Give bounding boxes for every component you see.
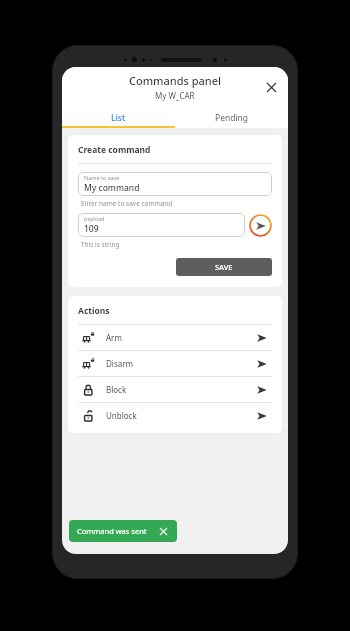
staticText: This is string <box>81 240 120 249</box>
staticText: payload <box>84 215 105 222</box>
button[interactable]: payload <box>78 213 245 237</box>
staticText: Command was sent <box>77 526 147 536</box>
button[interactable]: Send Block <box>254 382 270 398</box>
staticText: Name to save <box>84 174 120 181</box>
staticText: Actions <box>78 305 110 317</box>
staticText: Create command <box>78 144 151 156</box>
button[interactable]: Send Disarm <box>254 356 270 372</box>
staticText: Unblock <box>106 410 137 421</box>
staticText: Disarm <box>106 358 134 369</box>
staticText: 109 <box>84 223 99 235</box>
button[interactable]: Send Arm <box>254 330 270 346</box>
staticText: SAVE <box>215 262 233 272</box>
button[interactable]: Block <box>78 377 272 402</box>
staticText: Arm <box>106 332 122 343</box>
button[interactable]: Send payload <box>249 214 272 237</box>
button[interactable]: Send Unblock <box>254 408 270 424</box>
button[interactable]: Disarm <box>78 351 272 376</box>
staticText: Pending <box>215 112 249 124</box>
button[interactable]: SAVE <box>176 258 272 276</box>
button[interactable]: Arm <box>78 325 272 350</box>
button[interactable]: Dismiss <box>158 526 169 537</box>
staticText: My W_CAR <box>155 90 195 101</box>
staticText: My command <box>84 182 140 194</box>
staticText: Commands panel <box>129 73 222 88</box>
button[interactable]: Pending <box>175 107 288 128</box>
button[interactable]: List <box>62 107 175 128</box>
button[interactable]: Command was sent <box>69 520 177 542</box>
staticText: Enter name to save command <box>81 199 173 208</box>
staticText: Block <box>106 384 127 395</box>
button[interactable]: Name to save <box>78 172 272 196</box>
button[interactable]: Close <box>258 74 284 100</box>
staticText: List <box>111 112 126 124</box>
button[interactable]: Unblock <box>78 403 272 428</box>
